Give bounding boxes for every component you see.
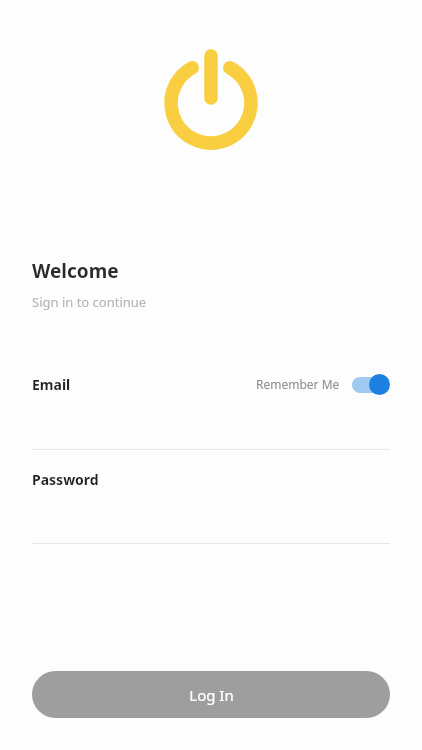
staticText: Remember Me (256, 376, 340, 392)
button[interactable]: Remember Me (256, 373, 390, 395)
staticText: Sign in to continue (32, 293, 147, 311)
button[interactable]: Password (32, 470, 99, 489)
button[interactable]: Email (32, 375, 256, 394)
other: Power logo (164, 46, 258, 150)
button[interactable]: Log In (32, 671, 390, 718)
staticText: Welcome (32, 258, 119, 284)
staticText: Log In (189, 685, 234, 705)
